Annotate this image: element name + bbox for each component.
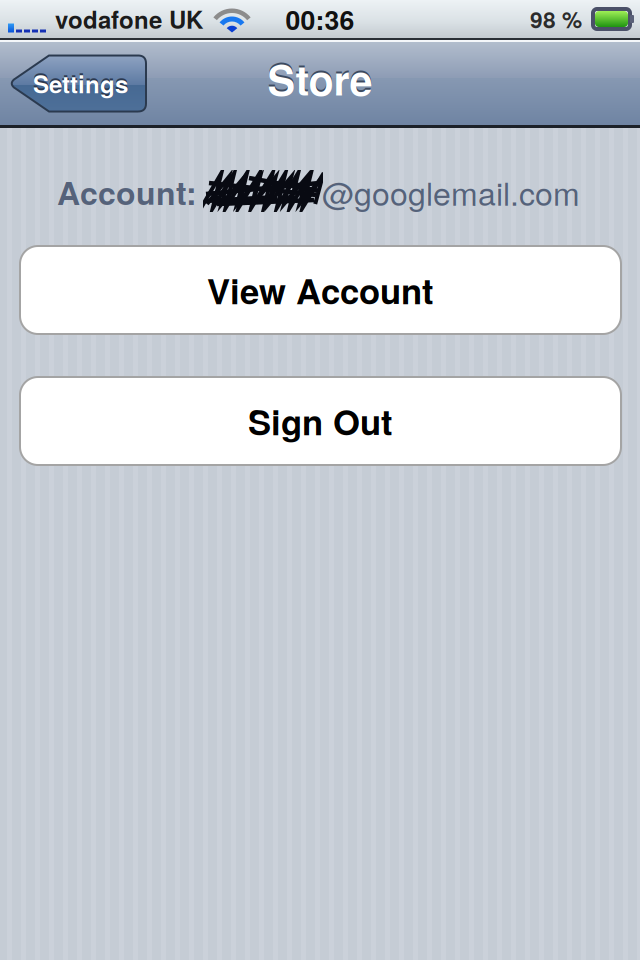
staticText: Settings bbox=[33, 64, 128, 99]
staticText: @googlemail.com bbox=[322, 169, 580, 215]
staticText: Account: bbox=[57, 169, 197, 215]
button[interactable]: View Account bbox=[20, 246, 621, 334]
staticText: vodafone UK bbox=[55, 2, 203, 36]
button[interactable]: Sign Out bbox=[20, 377, 621, 465]
staticText: View Account bbox=[207, 265, 434, 315]
staticText: Settings bbox=[33, 66, 128, 101]
staticText: 00:36 bbox=[285, 0, 354, 38]
staticText: Sign Out bbox=[248, 396, 393, 446]
staticText: 98 % bbox=[530, 3, 582, 35]
button[interactable]: Settings bbox=[10, 54, 147, 112]
staticText: Store bbox=[267, 49, 372, 108]
staticText: Store bbox=[267, 47, 372, 106]
